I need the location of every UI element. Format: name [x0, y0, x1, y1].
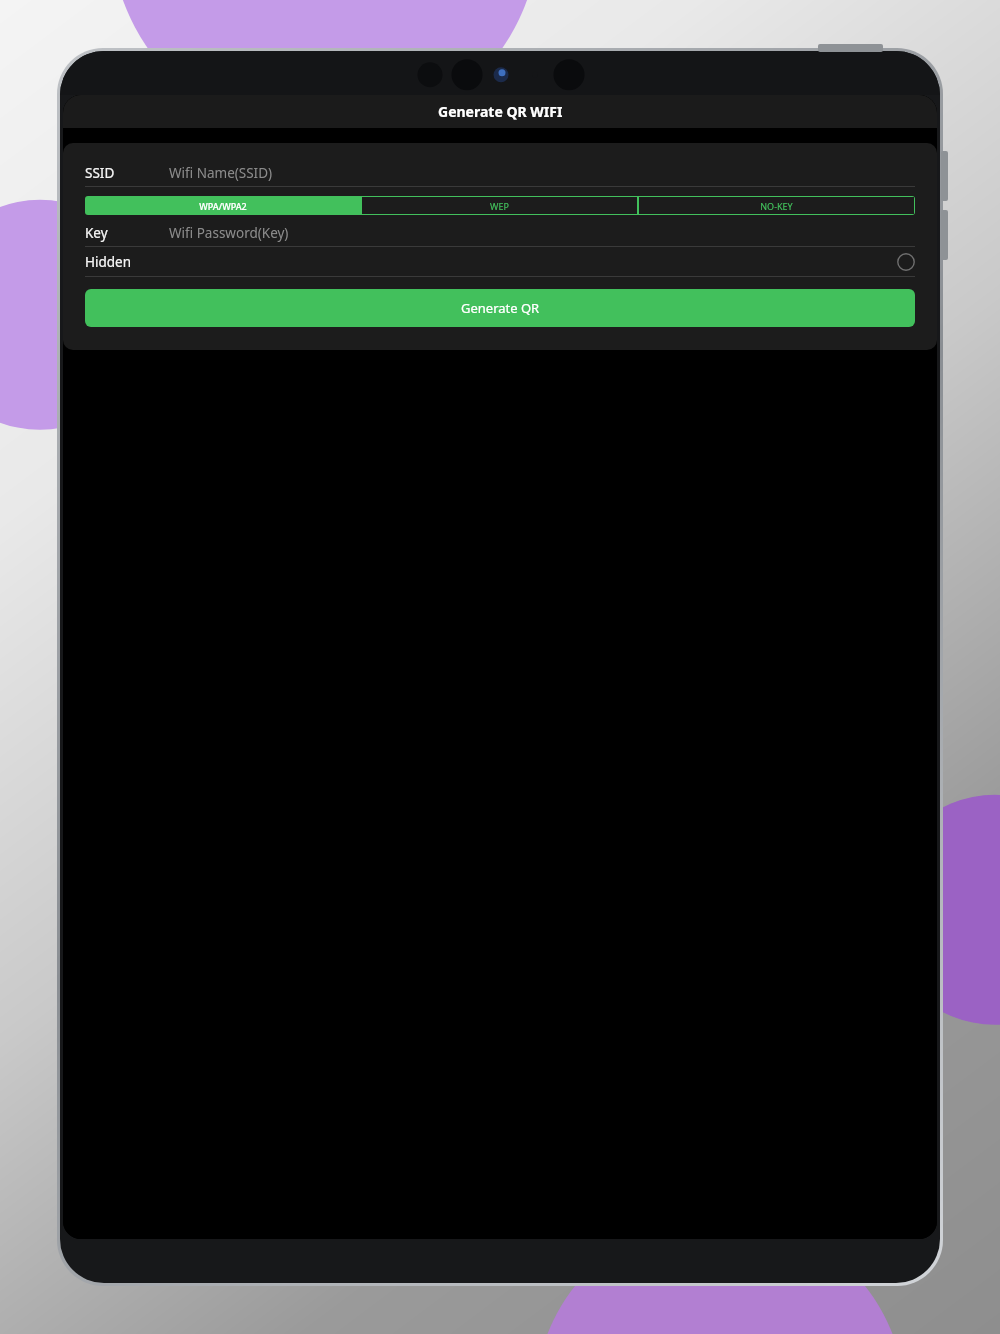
button[interactable]: WPA/WPA2	[85, 196, 361, 215]
staticText: Wifi Password(Key)	[169, 224, 289, 242]
staticText: Key	[85, 224, 108, 242]
button[interactable]: SSID	[85, 160, 915, 186]
staticText: Generate QR	[461, 299, 540, 317]
button[interactable]: WEP	[361, 196, 638, 215]
staticText: Generate QR WIFI	[438, 102, 563, 121]
staticText: Wifi Name(SSID)	[169, 164, 273, 182]
staticText: WPA/WPA2	[199, 200, 247, 212]
button[interactable]: Generate QR WIFI	[63, 95, 937, 128]
button[interactable]: Generate QR	[85, 289, 915, 327]
staticText: WEP	[490, 200, 509, 212]
staticText: Hidden	[85, 253, 132, 271]
other: Hidden network toggle	[897, 253, 915, 271]
staticText: SSID	[85, 164, 115, 182]
button[interactable]: Key	[85, 220, 915, 246]
button[interactable]: NO-KEY	[638, 196, 915, 215]
staticText: NO-KEY	[760, 200, 793, 212]
button[interactable]: Hidden	[85, 247, 915, 276]
